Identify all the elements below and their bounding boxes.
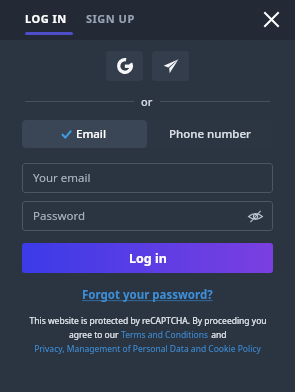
button[interactable]: Terms and Conditions — [121, 329, 209, 341]
staticText: Terms and Conditions — [121, 329, 209, 341]
button[interactable]: SIGN UP — [73, 0, 148, 36]
staticText: LOG IN — [25, 11, 67, 26]
staticText: or — [141, 94, 153, 109]
button[interactable]: Phone number — [147, 120, 273, 148]
button[interactable]: Password — [22, 201, 273, 231]
staticText: Phone number — [169, 126, 251, 142]
staticText: SIGN UP — [86, 11, 135, 26]
button[interactable]: Email — [22, 120, 147, 148]
button[interactable]: Sign in with Google — [106, 51, 143, 81]
staticText: agree to our — [69, 329, 121, 341]
button[interactable]: Your email — [22, 163, 273, 193]
staticText: Password — [33, 208, 86, 224]
staticText: Your email — [33, 170, 91, 186]
staticText: Forgot your password? — [82, 287, 213, 303]
button[interactable]: Show password — [246, 207, 264, 225]
button[interactable]: LOG IN — [0, 0, 73, 35]
button[interactable]: Sign in with Telegram — [152, 51, 189, 81]
staticText: and — [209, 329, 227, 341]
staticText: Privacy, Management of Personal Data and… — [34, 343, 261, 355]
staticText: Log in — [129, 250, 167, 267]
staticText: This website is protected by reCAPTCHA. … — [29, 315, 267, 327]
button[interactable]: Close — [257, 5, 286, 34]
button[interactable]: Forgot your password? — [76, 284, 219, 306]
staticText: Email — [76, 126, 107, 142]
button[interactable]: Log in — [22, 243, 273, 273]
button[interactable]: Privacy, Management of Personal Data and… — [34, 343, 261, 355]
